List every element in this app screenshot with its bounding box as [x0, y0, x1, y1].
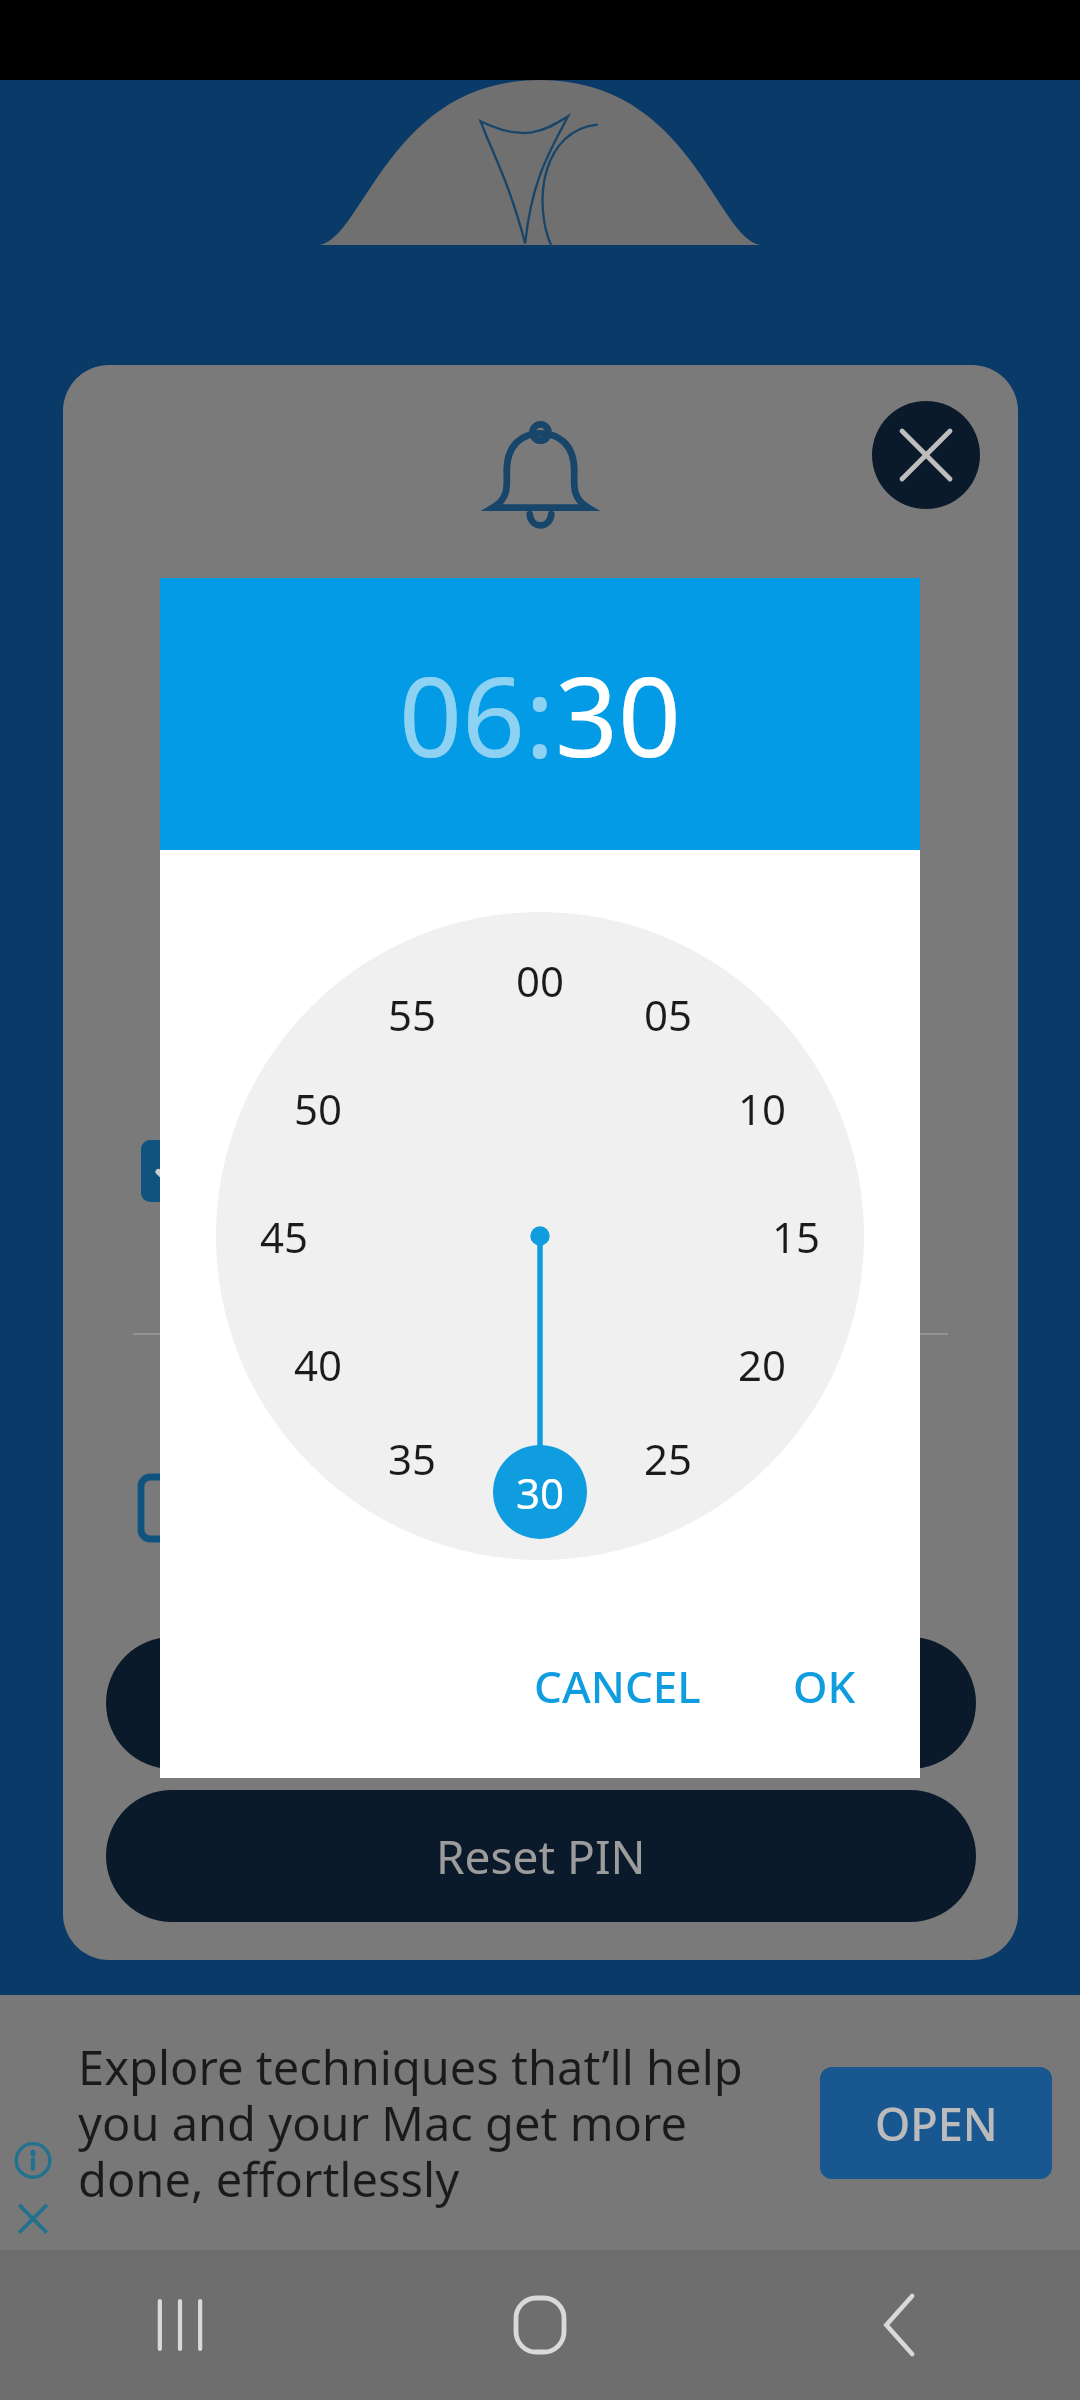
button[interactable] — [106, 1637, 976, 1769]
staticText: Explore techniques that’ll help you and … — [78, 2035, 798, 2211]
button[interactable]: 35 — [376, 1430, 448, 1487]
button[interactable]: Reset PIN — [106, 1790, 976, 1922]
button[interactable]: 06 — [399, 639, 525, 789]
staticText: : — [525, 639, 555, 789]
button[interactable] — [141, 1477, 203, 1539]
button[interactable]: 40 — [282, 1336, 354, 1393]
button[interactable]: 20 — [726, 1336, 798, 1393]
button[interactable]: 30 — [504, 1464, 576, 1521]
button[interactable]: Recents — [0, 2250, 360, 2400]
button[interactable]: 00 — [504, 952, 576, 1009]
button[interactable] — [141, 1140, 203, 1202]
staticText: Reset PIN — [436, 1825, 646, 1888]
button[interactable]: OK — [769, 1634, 880, 1738]
button[interactable]: Close — [872, 401, 980, 509]
button[interactable]: OPEN — [820, 2067, 1052, 2179]
button[interactable]: 45 — [248, 1208, 320, 1265]
staticText: OPEN — [875, 2093, 998, 2154]
button[interactable]: 25 — [632, 1430, 704, 1487]
button[interactable]: 10 — [726, 1080, 798, 1137]
button[interactable]: 55 — [376, 986, 448, 1043]
button[interactable]: 15 — [760, 1208, 832, 1265]
button[interactable]: 50 — [282, 1080, 354, 1137]
staticText: CANCEL — [534, 1656, 701, 1716]
button[interactable]: Home — [360, 2250, 720, 2400]
button[interactable]: Back — [720, 2250, 1080, 2400]
staticText: OK — [793, 1656, 856, 1716]
button[interactable]: 30 — [555, 639, 681, 789]
button[interactable]: 05 — [632, 986, 704, 1043]
button[interactable]: CANCEL — [510, 1634, 725, 1738]
